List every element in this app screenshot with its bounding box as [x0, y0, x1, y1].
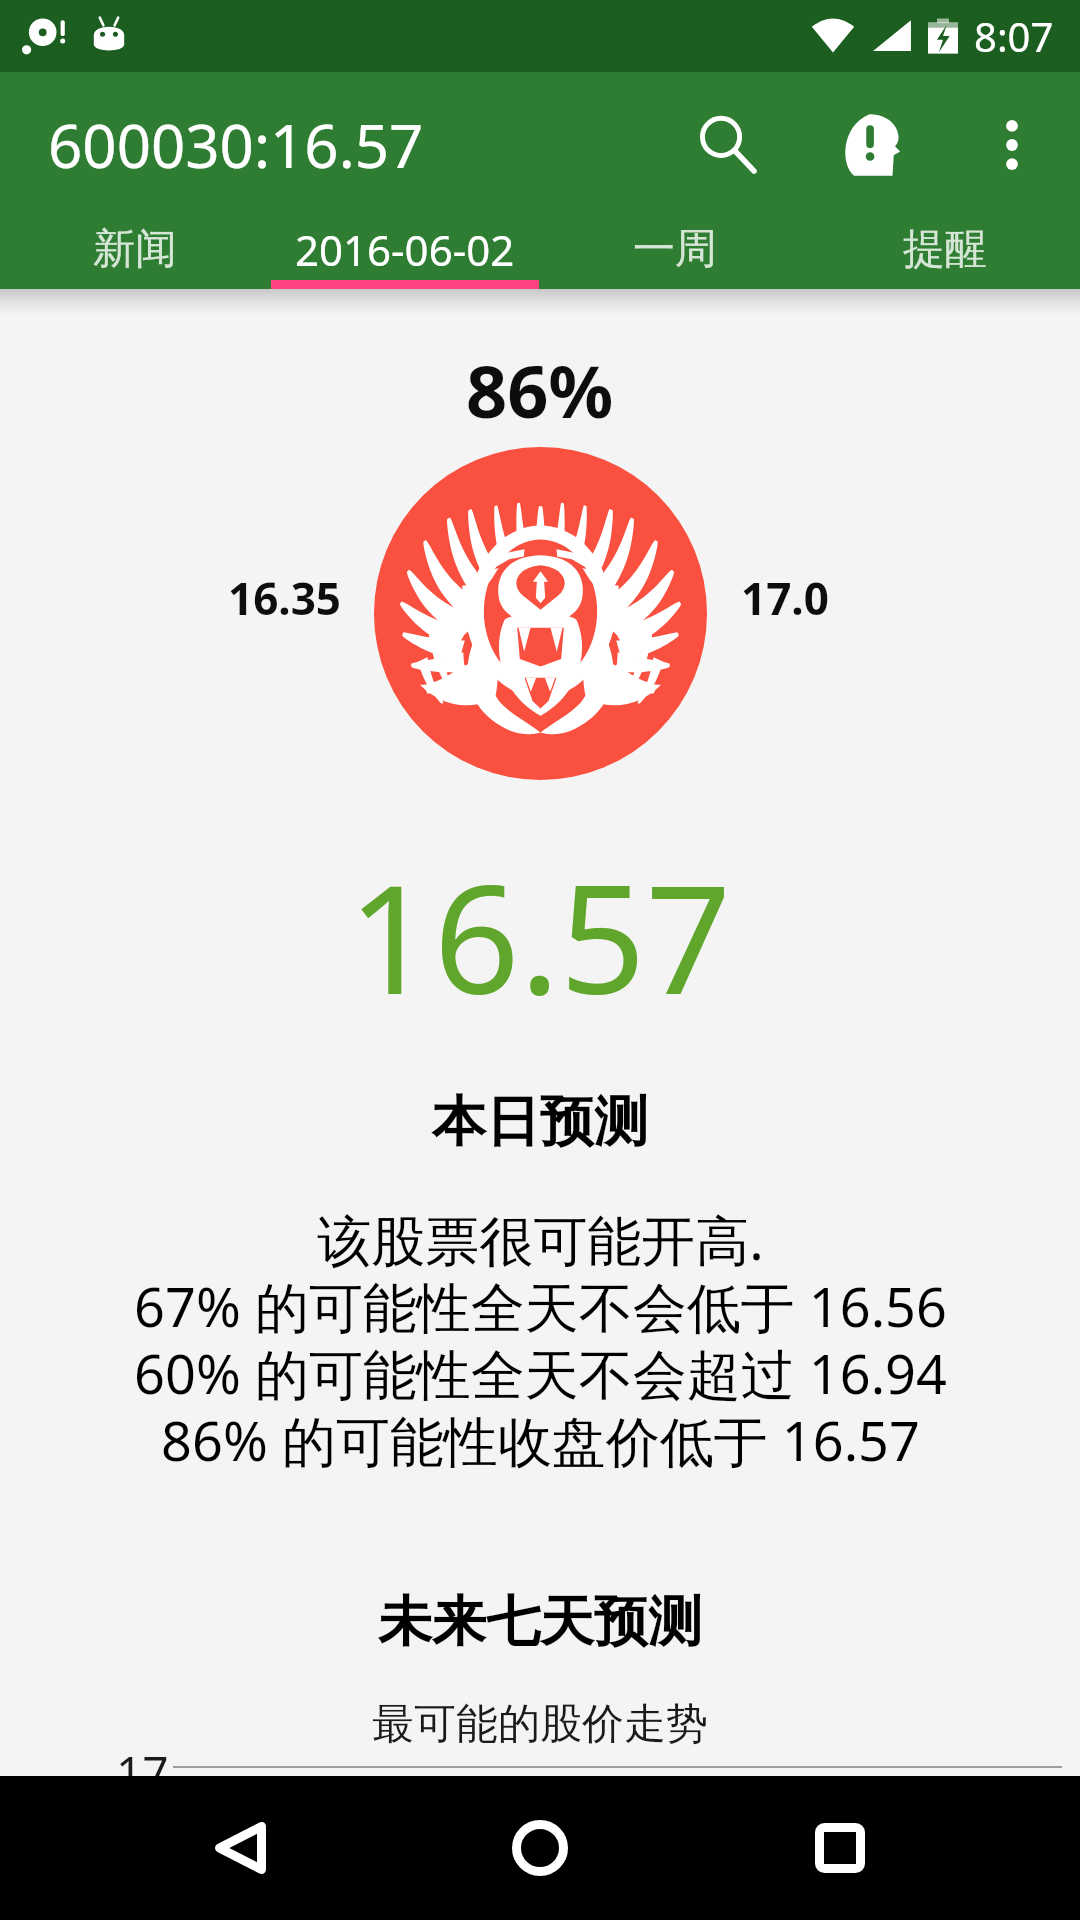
- staticText: 16.57: [348, 834, 732, 1038]
- button[interactable]: Recent apps: [768, 1776, 912, 1920]
- staticText: 新闻: [93, 223, 177, 276]
- button[interactable]: 新闻: [0, 217, 270, 289]
- staticText: 600030:16.57: [48, 104, 424, 186]
- staticText: 该股票很可能开高. 67% 的可能性全天不会低于 16.56 60% 的可能性全…: [134, 1202, 947, 1477]
- staticText: 8:07: [974, 9, 1054, 63]
- button[interactable]: More options: [944, 77, 1080, 213]
- button[interactable]: 2016-06-02: [270, 217, 540, 289]
- staticText: 17.0: [741, 568, 829, 628]
- button[interactable]: Back: [168, 1776, 312, 1920]
- staticText: 16.35: [228, 568, 342, 628]
- staticText: 17: [116, 1741, 169, 1781]
- staticText: 86%: [466, 341, 614, 439]
- staticText: 一周: [633, 223, 717, 276]
- staticText: 提醒: [903, 223, 987, 276]
- staticText: 最可能的股价走势: [372, 1698, 708, 1751]
- button[interactable]: 提醒: [810, 217, 1080, 289]
- button[interactable]: Alerts: [800, 73, 944, 217]
- button[interactable]: Home: [468, 1776, 612, 1920]
- button[interactable]: Search: [656, 73, 800, 217]
- staticText: 未来七天预测: [378, 1588, 702, 1656]
- staticText: 2016-06-02: [295, 221, 515, 278]
- staticText: 本日预测: [432, 1088, 648, 1156]
- button[interactable]: 一周: [540, 217, 810, 289]
